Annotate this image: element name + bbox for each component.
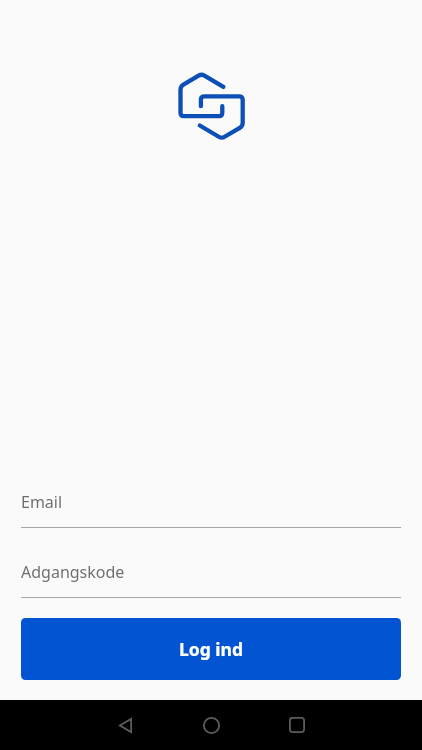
button[interactable]: Home (168, 700, 254, 750)
button[interactable]: Back (82, 700, 168, 750)
staticText: Email (21, 491, 63, 513)
staticText: Log ind (179, 637, 243, 661)
button[interactable]: Adgangskode (21, 551, 401, 598)
button[interactable]: Log ind (21, 618, 401, 680)
button[interactable]: Recents (254, 700, 340, 750)
button[interactable]: Email (21, 481, 401, 528)
staticText: Adgangskode (21, 561, 125, 583)
